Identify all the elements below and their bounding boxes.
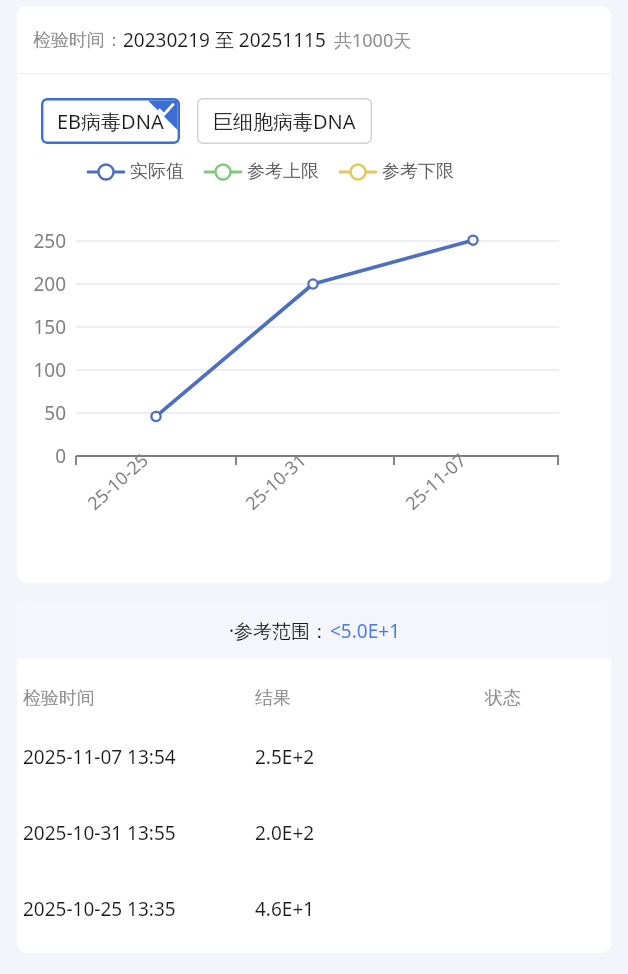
button[interactable]: 巨细胞病毒DNA [197,98,372,144]
staticText: 状态 [485,687,521,710]
button[interactable]: 参考下限 [339,160,454,183]
staticText: 50 [17,400,66,426]
staticText: 25-10-25 [82,447,154,516]
staticText: 4.6E+1 [255,896,315,922]
staticText: 巨细胞病毒DNA [213,108,356,135]
staticText: 共1000天 [334,28,412,53]
button[interactable]: 实际值 [87,160,184,183]
staticText: 150 [17,314,66,340]
staticText: 检验时间 [23,687,95,710]
staticText: 2025-11-07 13:54 [23,744,176,770]
staticText: 2.5E+2 [255,744,315,770]
staticText: <5.0E+1 [330,618,400,644]
staticText: 20230219 至 20251115 [123,27,326,53]
staticText: 参考上限 [247,160,319,183]
staticText: 100 [17,357,66,383]
staticText: 200 [17,271,66,297]
staticText: 0 [17,443,66,469]
staticText: 2025-10-25 13:35 [23,896,176,922]
staticText: 2025-10-31 13:55 [23,820,176,846]
staticText: 2.0E+2 [255,820,315,846]
staticText: 结果 [255,687,291,710]
staticText: EB病毒DNA [57,108,164,135]
staticText: 检验时间： [33,29,123,52]
button[interactable]: 参考上限 [204,160,319,183]
staticText: 25-10-31 [240,447,312,516]
staticText: 参考下限 [382,160,454,183]
staticText: 25-11-07 [400,447,472,516]
button[interactable]: EB病毒DNA [41,98,180,144]
staticText: 250 [17,228,66,254]
staticText: 实际值 [130,160,184,183]
staticText: ·参考范围： [229,618,330,644]
